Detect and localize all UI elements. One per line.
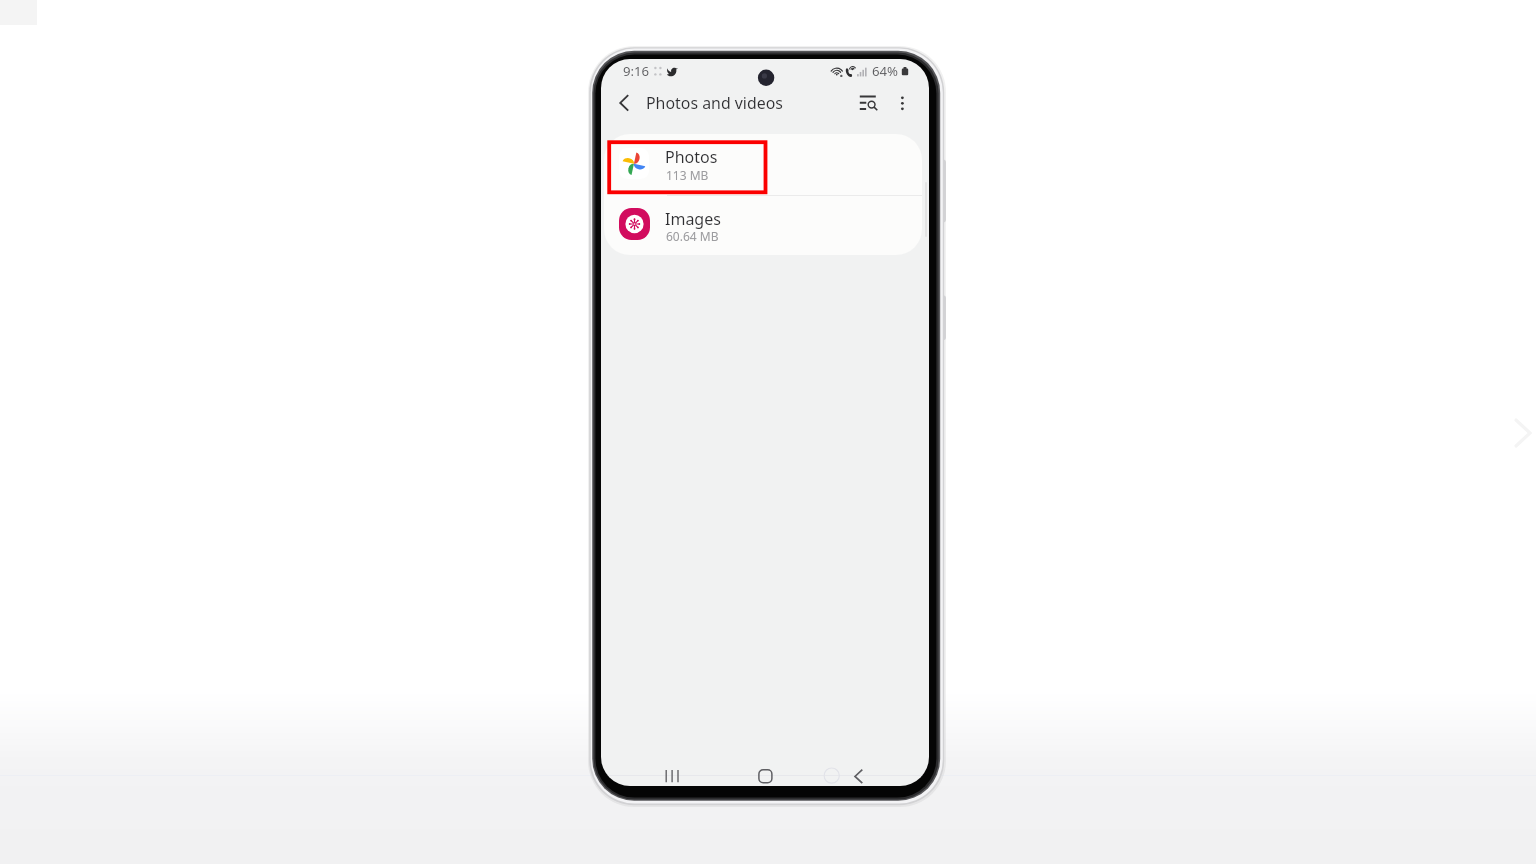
button[interactable]: Navigate up bbox=[612, 88, 642, 118]
staticText: Photos and videos bbox=[646, 92, 783, 114]
staticText: 64% bbox=[872, 62, 899, 80]
button[interactable]: Search bbox=[853, 88, 883, 118]
staticText: 113 MB bbox=[666, 167, 709, 183]
button[interactable]: Images bbox=[604, 195, 922, 254]
button[interactable]: Home bbox=[749, 765, 782, 786]
staticText: 9:16 bbox=[623, 62, 650, 80]
staticText: Photos bbox=[665, 146, 718, 168]
button[interactable]: Back bbox=[842, 765, 875, 786]
button[interactable]: Recent apps bbox=[656, 765, 689, 786]
staticText: 60.64 MB bbox=[666, 228, 719, 244]
button[interactable]: More options bbox=[888, 88, 918, 118]
staticText: Images bbox=[665, 208, 721, 230]
button[interactable]: Photos bbox=[604, 134, 922, 195]
